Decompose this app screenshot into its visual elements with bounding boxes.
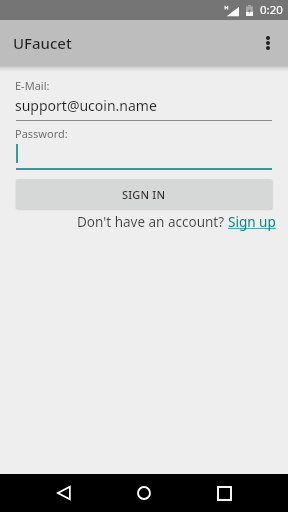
button[interactable]: SIGN IN xyxy=(16,179,272,209)
staticText: support@ucoin.name xyxy=(15,96,157,115)
button[interactable]: Back xyxy=(44,474,84,512)
button[interactable]: Home xyxy=(124,474,164,512)
staticText: UFaucet xyxy=(13,33,72,53)
staticText: Don't have an account? xyxy=(77,213,228,231)
button[interactable]: More options xyxy=(252,27,284,59)
staticText: 0:20 xyxy=(260,2,283,18)
staticText: E-Mail: xyxy=(15,78,50,93)
staticText: Password: xyxy=(15,126,68,141)
staticText: SIGN IN xyxy=(122,187,166,202)
button[interactable]: Sign up xyxy=(228,213,276,231)
button[interactable]: Recents xyxy=(204,474,244,512)
